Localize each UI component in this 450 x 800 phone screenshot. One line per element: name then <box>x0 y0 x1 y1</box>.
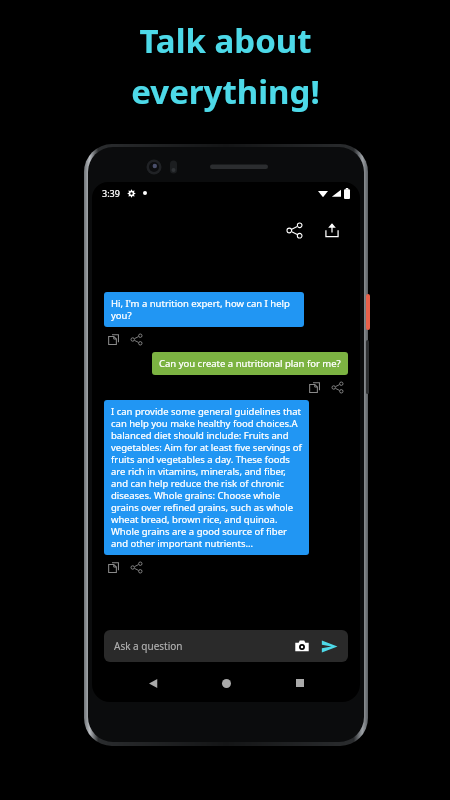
staticText: Ask a question <box>114 639 183 653</box>
button[interactable]: I can provide some general guidelines th… <box>104 400 309 555</box>
staticText: Can you create a nutritional plan for me… <box>159 357 341 370</box>
button[interactable]: Home <box>213 670 239 696</box>
button[interactable]: Export <box>318 216 346 244</box>
button[interactable]: Copy <box>104 330 122 348</box>
button[interactable]: Copy <box>104 558 122 576</box>
button[interactable]: Share conversation <box>280 216 308 244</box>
staticText: 3:39 <box>102 187 120 199</box>
button[interactable]: Recents <box>287 670 313 696</box>
button[interactable]: Send <box>318 635 340 657</box>
button[interactable]: Share message <box>127 558 145 576</box>
button[interactable]: Camera <box>292 636 312 656</box>
staticText: everything! <box>131 69 320 114</box>
button[interactable]: Share message <box>127 330 145 348</box>
staticText: Talk about <box>139 18 312 63</box>
button[interactable]: Hi, I'm a nutrition expert, how can I he… <box>104 292 304 327</box>
button[interactable]: Ask a question <box>104 630 348 662</box>
staticText: Hi, I'm a nutrition expert, how can I he… <box>111 297 297 322</box>
button[interactable]: Share message <box>328 378 346 396</box>
staticText: I can provide some general guidelines th… <box>111 405 302 550</box>
button[interactable]: Can you create a nutritional plan for me… <box>152 352 348 375</box>
button[interactable]: Back <box>140 670 166 696</box>
button[interactable]: Copy <box>305 378 323 396</box>
